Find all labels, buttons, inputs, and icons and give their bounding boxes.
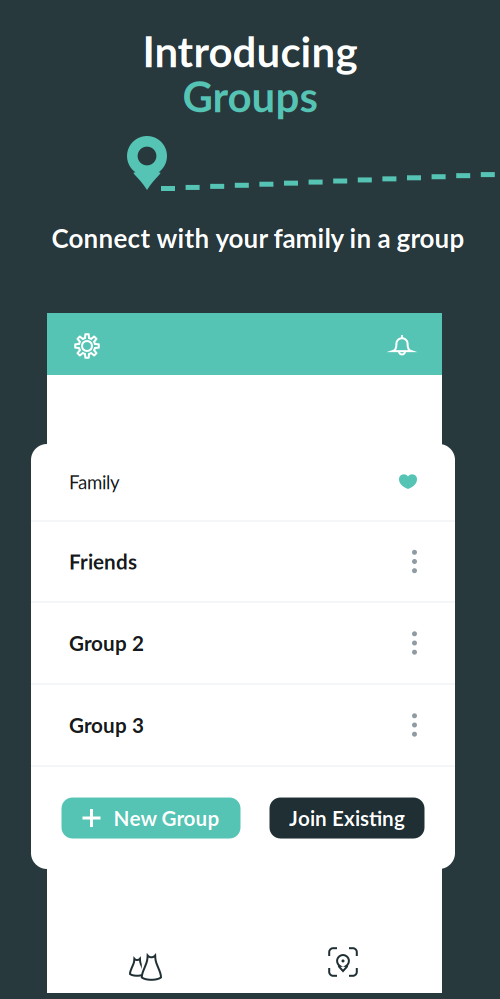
staticText: Friends bbox=[69, 549, 137, 574]
button[interactable]: Family bbox=[31, 443, 455, 520]
staticText: Connect with your family in a group bbox=[51, 222, 464, 254]
staticText: Join Existing bbox=[289, 806, 405, 830]
button[interactable]: Notifications bbox=[376, 319, 428, 371]
button[interactable]: Groups bbox=[47, 931, 244, 993]
staticText: Group 3 bbox=[69, 713, 144, 737]
staticText: Family bbox=[69, 471, 120, 493]
staticText: New Group bbox=[113, 806, 219, 830]
button[interactable]: Join Existing bbox=[269, 797, 424, 838]
staticText: Group 2 bbox=[69, 631, 144, 655]
button[interactable]: New Group bbox=[61, 797, 240, 838]
staticText: Groups bbox=[182, 71, 317, 121]
staticText: Introducing bbox=[142, 26, 357, 76]
button[interactable]: Find nearby bbox=[244, 931, 442, 993]
button[interactable]: Settings bbox=[61, 320, 113, 372]
button[interactable]: Group 3 bbox=[31, 684, 455, 765]
button[interactable]: Group 2 bbox=[31, 602, 455, 683]
button[interactable]: Friends bbox=[31, 521, 455, 601]
